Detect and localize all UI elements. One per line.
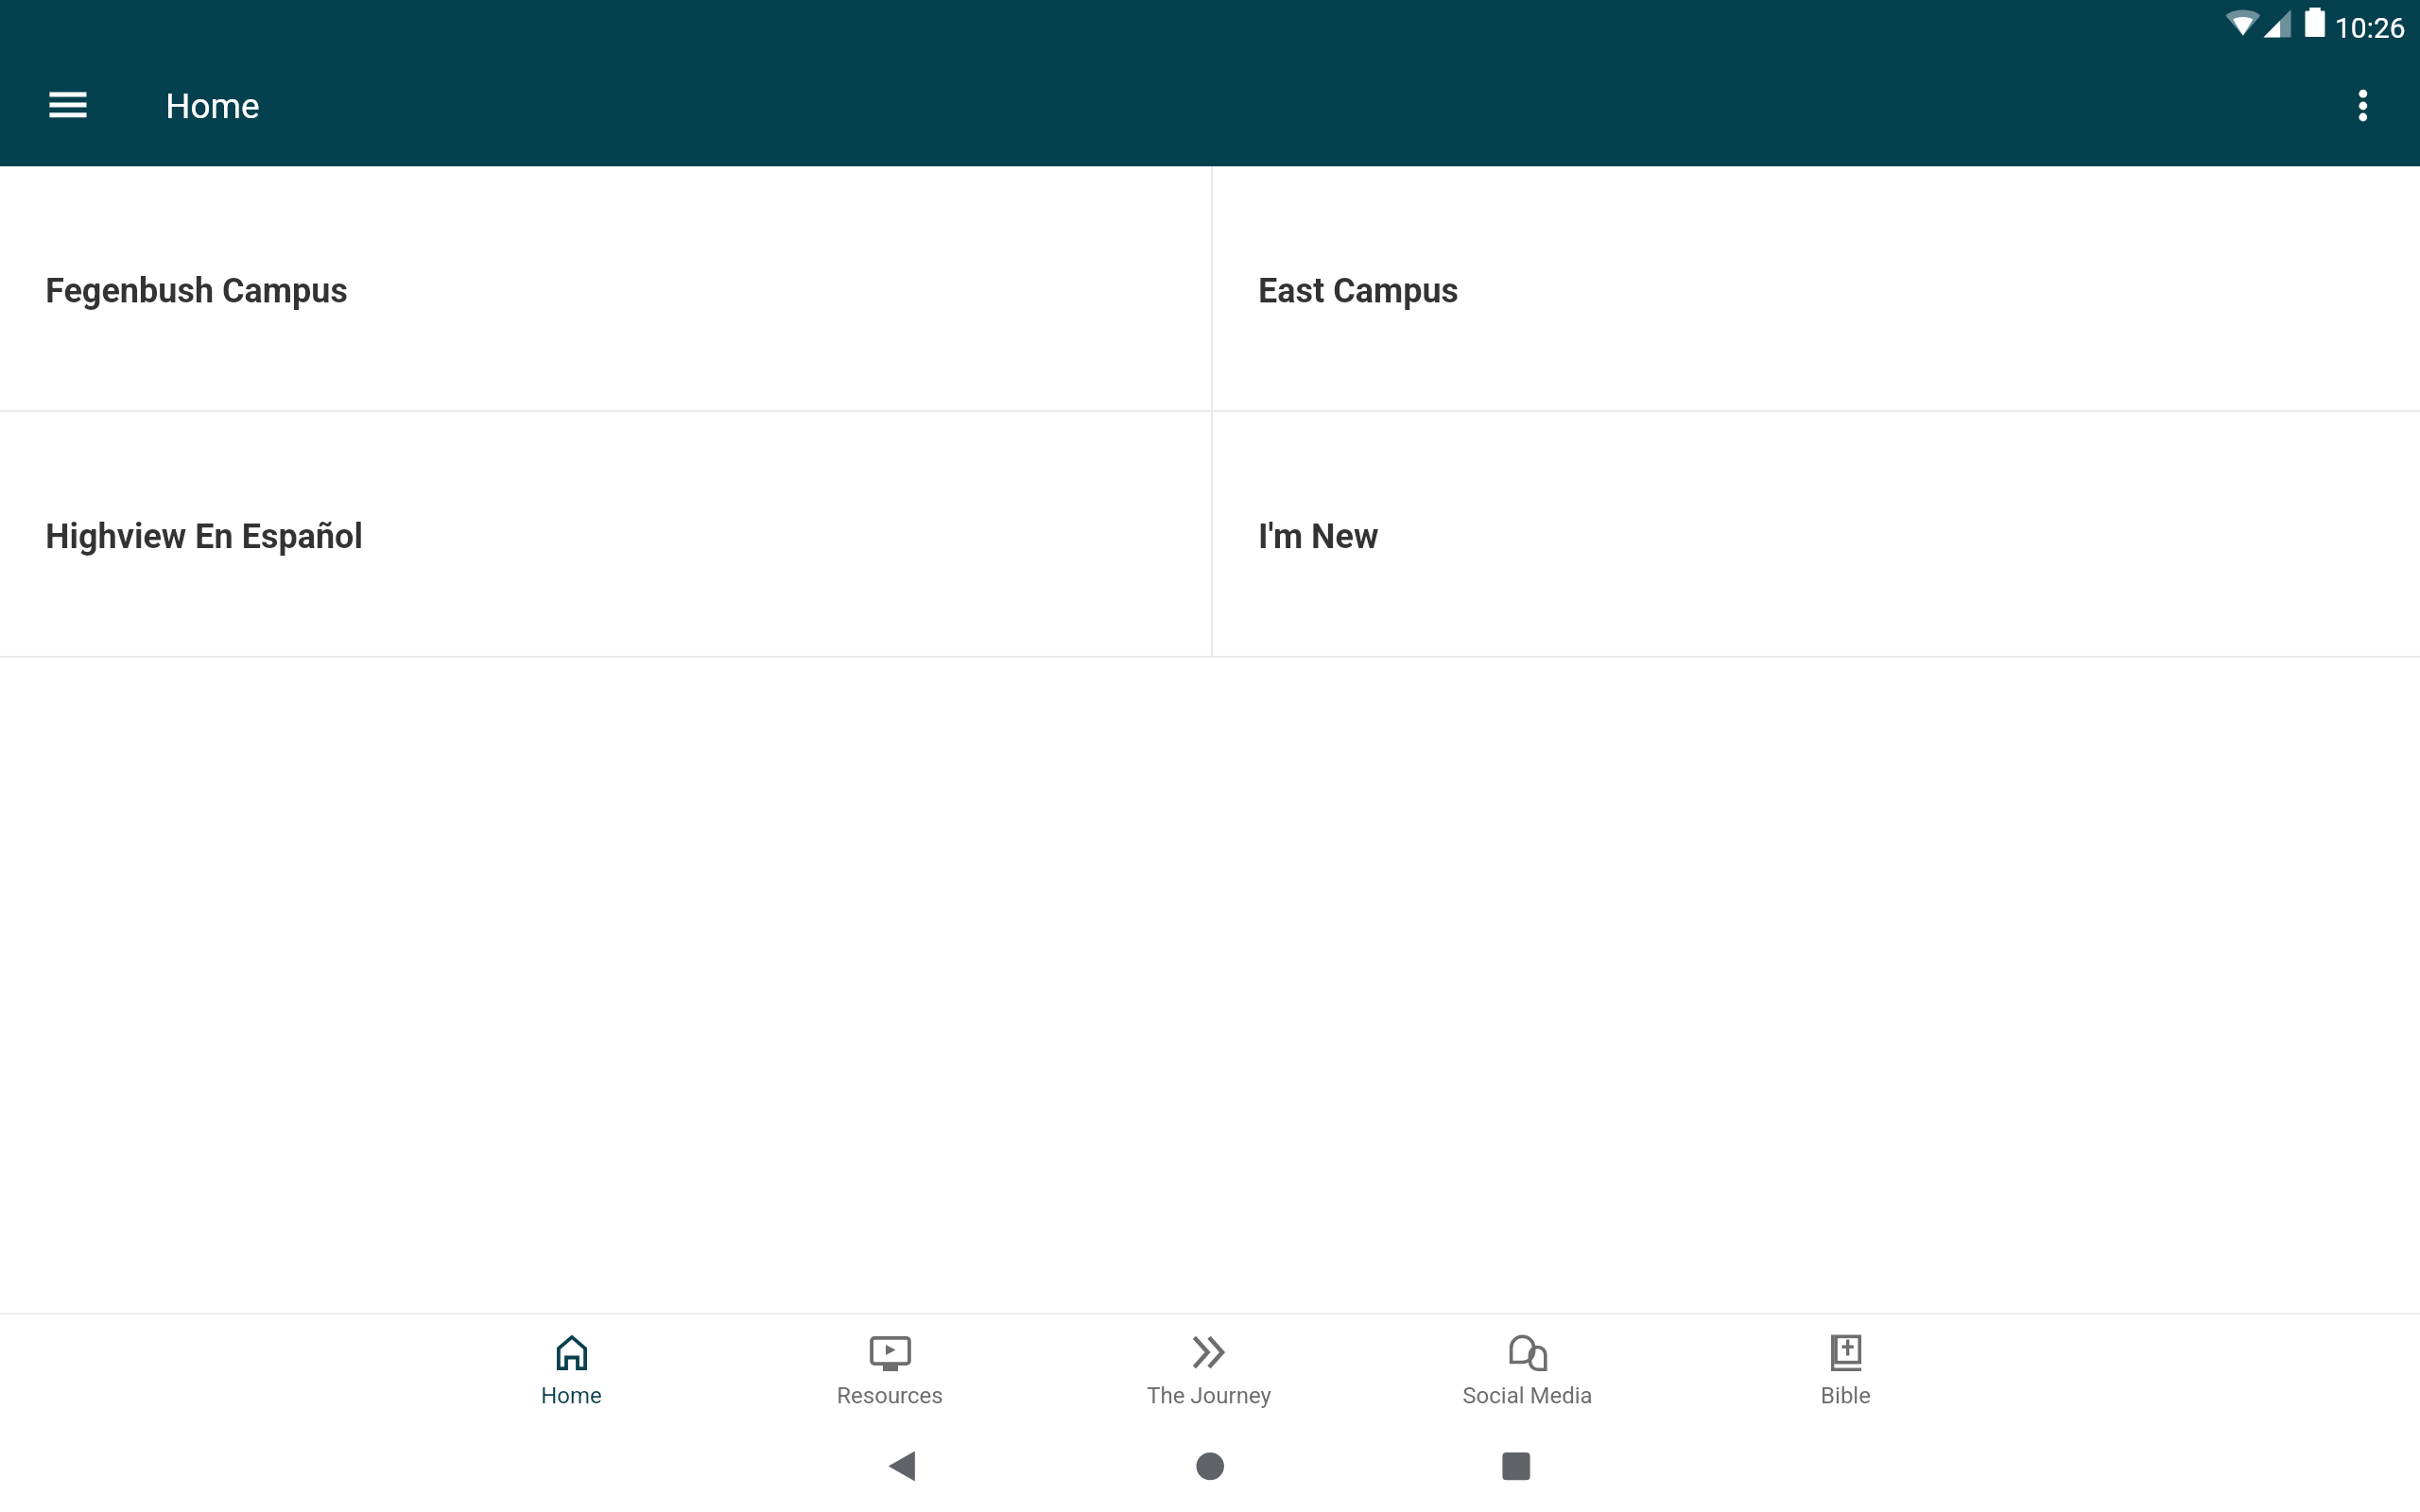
button[interactable]: More options <box>2322 61 2412 162</box>
staticText: Bible <box>1821 1383 1871 1409</box>
button[interactable]: Highview En Español <box>0 412 1211 656</box>
button[interactable]: The Journey <box>1049 1314 1368 1421</box>
button[interactable]: Bible <box>1686 1314 2005 1421</box>
staticText: Highview En Español <box>45 517 363 557</box>
staticText: Fegenbush Campus <box>45 271 348 311</box>
button[interactable]: Open navigation drawer <box>19 61 117 162</box>
staticText: East Campus <box>1258 271 1460 311</box>
staticText: Home <box>165 86 260 127</box>
button[interactable]: Social Media <box>1368 1314 1686 1421</box>
button[interactable]: Home <box>412 1314 731 1421</box>
staticText: 10:26 <box>2335 11 2406 44</box>
staticText: Home <box>541 1383 602 1409</box>
staticText: The Journey <box>1147 1383 1271 1409</box>
button[interactable]: Resources <box>731 1314 1049 1421</box>
button[interactable]: Fegenbush Campus <box>0 166 1211 410</box>
button[interactable]: East Campus <box>1213 166 2420 410</box>
button[interactable]: I'm New <box>1213 412 2420 656</box>
staticText: Social Media <box>1462 1383 1593 1409</box>
staticText: I'm New <box>1258 517 1379 557</box>
staticText: Resources <box>837 1383 943 1409</box>
